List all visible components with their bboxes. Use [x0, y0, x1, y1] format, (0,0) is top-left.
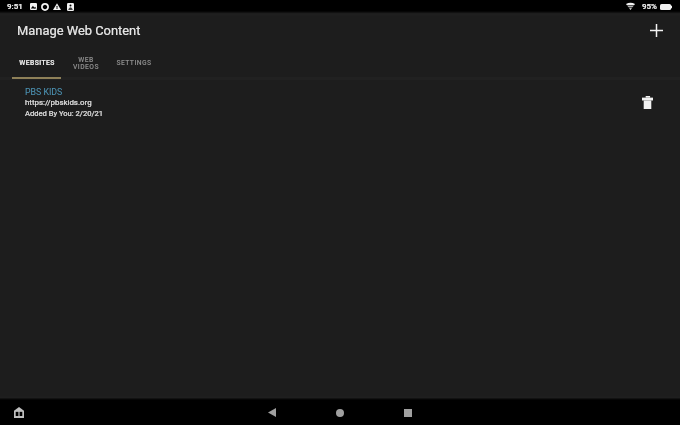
staticText: https://pbskids.org: [25, 98, 92, 107]
staticText: Added By You: 2/20/21: [25, 109, 104, 118]
button[interactable]: PBS KIDS: [0, 80, 680, 122]
button[interactable]: SETTINGS: [97, 50, 171, 78]
button[interactable]: WEB: [49, 50, 123, 78]
staticText: 9:51: [7, 2, 23, 11]
button[interactable]: Delete: [634, 89, 660, 115]
staticText: PBS KIDS: [25, 87, 63, 97]
button[interactable]: Home: [319, 400, 361, 425]
staticText: WEB: [78, 56, 94, 64]
button[interactable]: Add: [641, 15, 671, 45]
button[interactable]: Recents: [387, 400, 429, 425]
staticText: 95%: [642, 2, 657, 11]
staticText: VIDEOS: [73, 63, 99, 71]
button[interactable]: Back: [251, 400, 293, 425]
button[interactable]: WEBSITES: [0, 50, 74, 78]
staticText: SETTINGS: [116, 59, 152, 67]
staticText: WEBSITES: [19, 59, 55, 67]
button[interactable]: Hide keyboard: [9, 402, 29, 422]
staticText: Manage Web Content: [17, 23, 141, 38]
